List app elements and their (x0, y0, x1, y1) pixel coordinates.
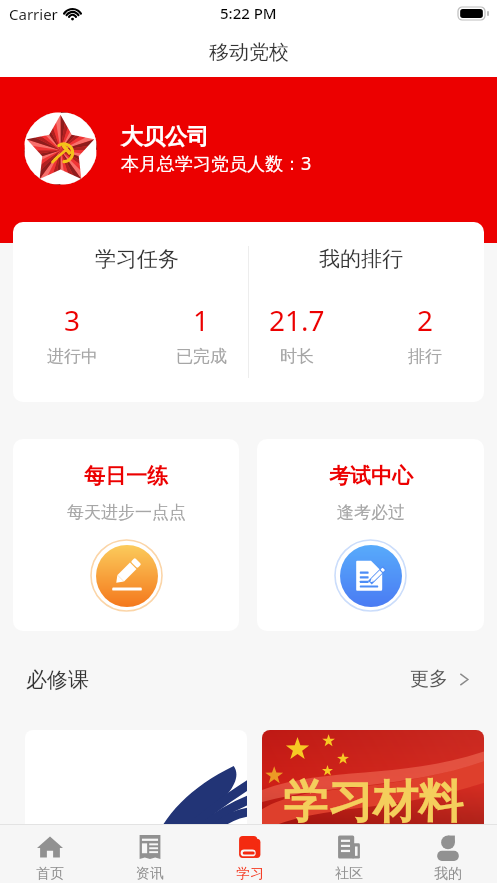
staticText: 移动党校 (209, 40, 289, 65)
staticText: 每天进步一点点 (67, 502, 186, 523)
button[interactable]: 更多 (410, 667, 471, 691)
staticText: 学习材料 (283, 774, 463, 831)
staticText: Carrier (9, 4, 58, 24)
button[interactable]: 考试中心 (257, 439, 484, 631)
staticText: 资讯 (136, 865, 164, 883)
staticText: 学习 (236, 865, 264, 883)
staticText: 首页 (36, 865, 64, 883)
staticText: 必修课 (26, 667, 89, 691)
staticText: 时长 (280, 346, 314, 367)
staticText: 3 (64, 301, 81, 339)
staticText: 大贝公司 (121, 123, 209, 151)
button[interactable]: Profile (398, 825, 497, 883)
staticText: 1 (193, 301, 210, 339)
button[interactable]: 2 (380, 301, 470, 367)
staticText: 逢考必过 (337, 502, 405, 523)
staticText: 21.7 (269, 301, 325, 339)
button[interactable]: 学习材料 (262, 730, 484, 850)
button[interactable]: 21.7 (252, 301, 342, 367)
staticText: 更多 (410, 667, 448, 691)
staticText: 已完成 (176, 346, 227, 367)
button[interactable] (25, 730, 247, 850)
button[interactable]: Community (299, 825, 398, 883)
staticText: 排行 (408, 346, 442, 367)
staticText: 5:22 PM (220, 3, 277, 23)
staticText: 我的排行 (319, 246, 403, 272)
staticText: 考试中心 (329, 463, 413, 489)
staticText: 我的 (434, 865, 462, 883)
button[interactable]: News (100, 825, 200, 883)
staticText: 社区 (335, 865, 363, 883)
button[interactable]: 1 (156, 301, 246, 367)
staticText: 进行中 (47, 346, 98, 367)
staticText: 本月总学习党员人数：3 (121, 151, 312, 176)
button[interactable]: Home (0, 825, 100, 883)
staticText: 2 (417, 301, 434, 339)
staticText: 学习任务 (95, 246, 179, 272)
button[interactable]: 3 (27, 301, 117, 367)
button[interactable]: 每日一练 (13, 439, 239, 631)
button[interactable]: Study (200, 825, 299, 883)
staticText: 每日一练 (84, 463, 168, 489)
